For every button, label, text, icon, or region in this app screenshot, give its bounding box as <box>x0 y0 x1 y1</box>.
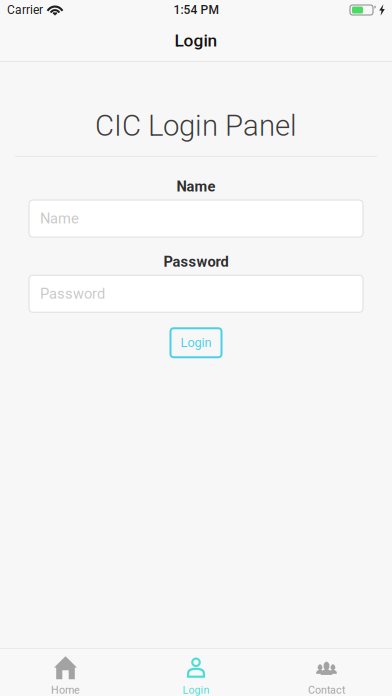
staticText: Contact <box>308 684 345 696</box>
button[interactable]: Login <box>0 20 392 61</box>
button[interactable]: Login <box>170 328 221 357</box>
staticText: CIC Login Panel <box>95 108 297 143</box>
staticText: Login <box>180 335 211 350</box>
staticText: Name <box>40 210 79 227</box>
button[interactable]: Password <box>29 275 363 312</box>
staticText: Name <box>176 178 215 195</box>
button[interactable]: Login <box>131 649 261 696</box>
staticText: Login <box>182 684 209 696</box>
button[interactable]: Name <box>29 200 363 237</box>
staticText: 1:54 PM <box>173 3 218 17</box>
button[interactable]: Contact <box>261 649 392 696</box>
staticText: Carrier <box>7 3 43 17</box>
staticText: Home <box>51 684 80 696</box>
staticText: Login <box>174 30 217 51</box>
button[interactable]: Home <box>0 649 131 696</box>
staticText: Password <box>40 285 105 302</box>
staticText: Password <box>163 253 228 270</box>
